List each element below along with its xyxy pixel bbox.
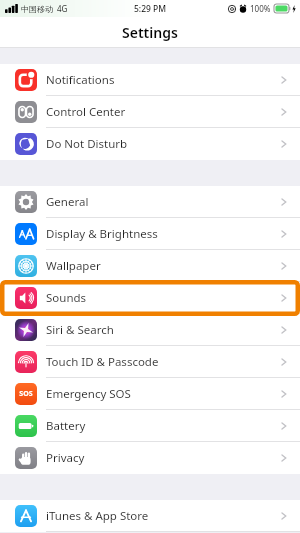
button[interactable]: Privacy xyxy=(0,442,300,474)
staticText: 5:29 PM xyxy=(134,3,167,15)
button[interactable]: Touch ID & Passcode xyxy=(0,346,300,378)
staticText: SOS xyxy=(19,389,33,399)
button[interactable]: Do Not Disturb xyxy=(0,128,300,160)
staticText: Control Center xyxy=(46,104,126,120)
staticText: 4G xyxy=(57,3,68,14)
button[interactable]: General xyxy=(0,186,300,218)
staticText: Touch ID & Passcode xyxy=(46,354,159,370)
staticText: Privacy xyxy=(46,450,85,466)
staticText: Wallpaper xyxy=(46,258,101,274)
button[interactable]: Siri & Search xyxy=(0,314,300,346)
staticText: Battery xyxy=(46,418,86,434)
button[interactable] xyxy=(0,280,300,316)
staticText: iTunes & App Store xyxy=(46,508,149,524)
button[interactable]: Notifications xyxy=(0,64,300,96)
staticText: Sounds xyxy=(46,290,87,306)
staticText: Do Not Disturb xyxy=(46,136,128,152)
button[interactable]: Display & Brightness xyxy=(0,218,300,250)
button[interactable]: SOS xyxy=(0,378,300,410)
staticText: Emergency SOS xyxy=(46,386,131,402)
button[interactable]: Control Center xyxy=(0,96,300,128)
button[interactable]: Battery xyxy=(0,410,300,442)
staticText: 100% xyxy=(250,3,271,14)
button[interactable]: iTunes & App Store xyxy=(0,500,300,532)
staticText: Display & Brightness xyxy=(46,226,158,242)
staticText: Notifications xyxy=(46,72,115,88)
button[interactable]: Wallpaper xyxy=(0,250,300,282)
staticText: Settings xyxy=(122,23,178,42)
button[interactable]: Sounds xyxy=(0,282,300,314)
staticText: 中国移动 xyxy=(21,4,53,14)
staticText: Siri & Search xyxy=(46,322,114,338)
staticText: General xyxy=(46,194,89,210)
